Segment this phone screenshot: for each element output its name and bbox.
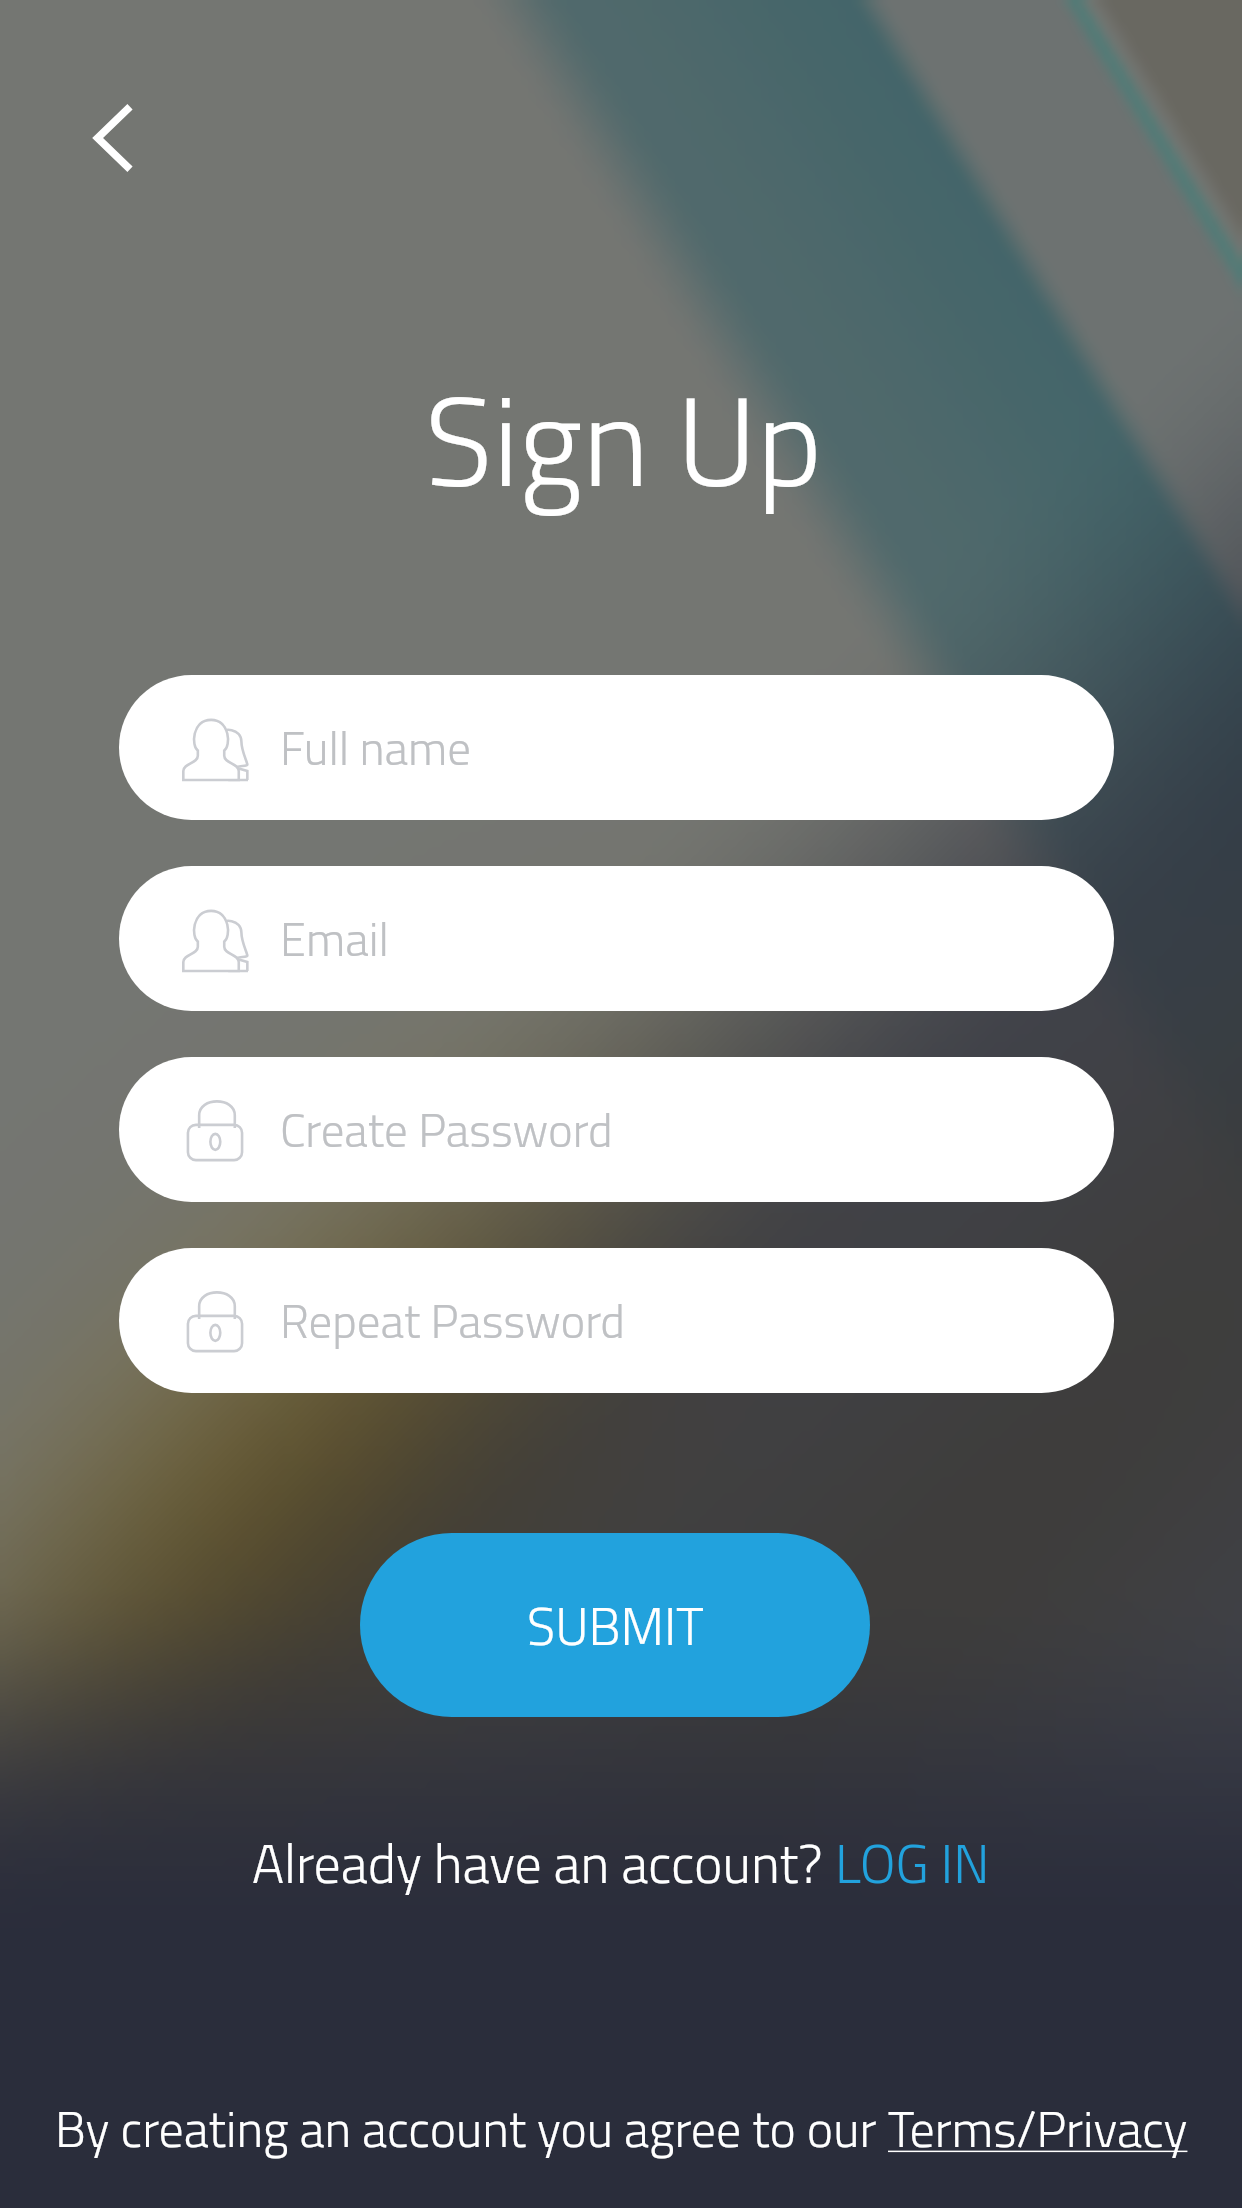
button[interactable]: Email [119, 866, 1114, 1011]
button[interactable]: LOG IN [835, 1822, 990, 1904]
staticText: SUBMIT [527, 1586, 704, 1665]
staticText: Terms/Privacy [888, 2090, 1188, 2166]
button[interactable]: Back [58, 78, 178, 198]
button[interactable]: Full name [119, 675, 1114, 820]
button[interactable]: Terms/Privacy [888, 2090, 1188, 2166]
button[interactable]: SUBMIT [360, 1533, 870, 1717]
staticText: Repeat Password [280, 1285, 625, 1356]
button[interactable]: Create Password [119, 1057, 1114, 1202]
staticText: Create Password [280, 1094, 613, 1165]
staticText: Email [280, 903, 389, 974]
staticText: Full name [280, 712, 472, 783]
staticText: By creating an account you agree to our [55, 2090, 888, 2166]
staticText: LOG IN [835, 1822, 990, 1904]
staticText: Already have an account? [252, 1822, 835, 1904]
button[interactable]: Repeat Password [119, 1248, 1114, 1393]
staticText: Sign Up [425, 344, 823, 534]
